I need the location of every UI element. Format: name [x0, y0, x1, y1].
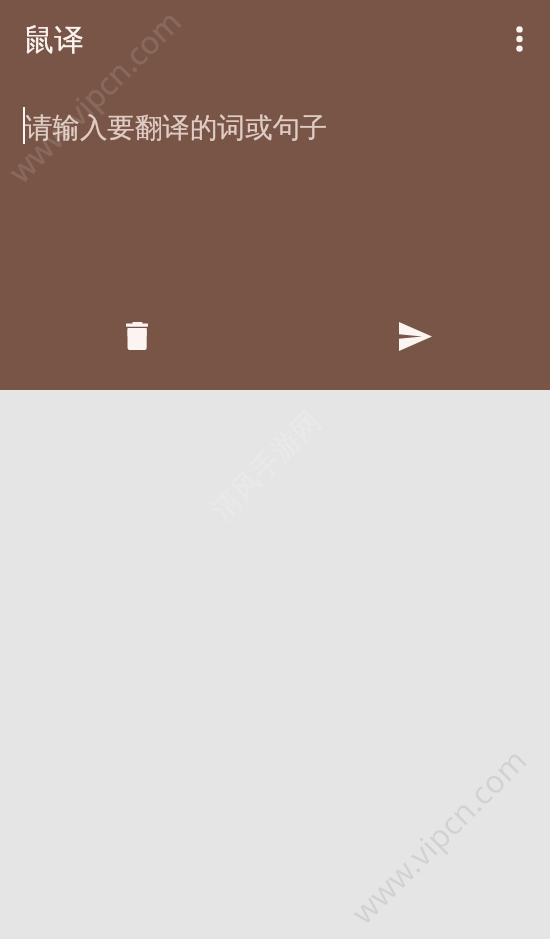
button[interactable]: 请输入要翻译的词或句子 — [0, 78, 550, 308]
button[interactable]: More options — [494, 15, 542, 63]
staticText: 鼠译 — [24, 21, 84, 59]
button[interactable]: Clear text — [113, 312, 161, 360]
staticText: www.vipcn.com — [0, 0, 189, 191]
staticText: 请输入要翻译的词或句子 — [25, 111, 328, 146]
staticText: www.vipcn.com — [341, 738, 535, 933]
button[interactable]: Send — [391, 312, 439, 360]
